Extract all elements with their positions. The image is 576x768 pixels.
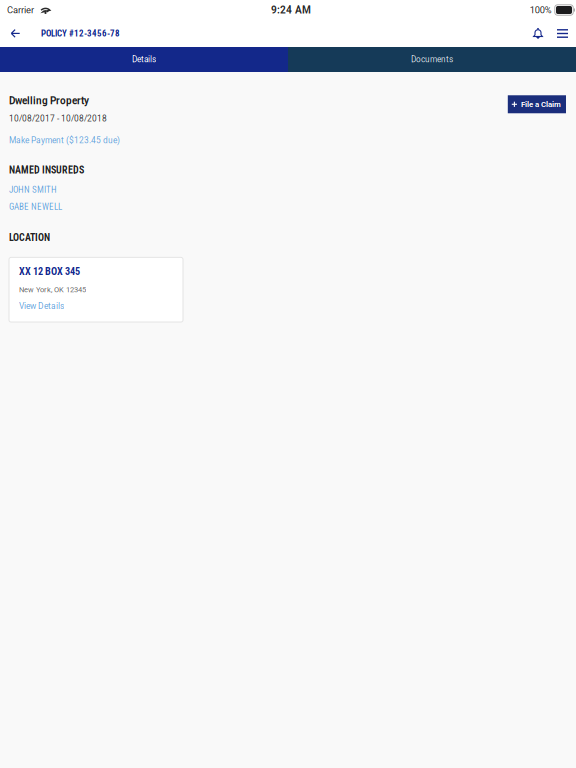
button[interactable]: Back — [2, 20, 29, 47]
button[interactable]: Notifications — [524, 20, 552, 47]
button[interactable]: POLICY #12-3456-78 — [29, 20, 126, 47]
staticText: GABE NEWELL — [9, 201, 62, 212]
button[interactable]: GABE NEWELL — [9, 201, 62, 212]
button[interactable]: Details — [0, 47, 288, 72]
staticText: New York, OK 12345 — [19, 285, 86, 294]
button[interactable]: XX 12 BOX 345 — [9, 257, 183, 322]
button[interactable]: Make Payment ($123.45 due) — [9, 136, 120, 145]
staticText: Carrier — [7, 4, 34, 15]
staticText: 10/08/2017 - 10/08/2018 — [9, 114, 107, 123]
staticText: JOHN SMITH — [9, 184, 57, 195]
button[interactable]: JOHN SMITH — [9, 184, 57, 195]
staticText: XX 12 BOX 345 — [19, 265, 80, 277]
staticText: 100% — [530, 4, 552, 15]
staticText: 9:24 AM — [271, 4, 311, 16]
staticText: LOCATION — [9, 232, 50, 243]
staticText: Make Payment ($123.45 due) — [9, 136, 120, 145]
staticText: NAMED INSUREDS — [9, 164, 84, 176]
button[interactable]: Menu — [552, 20, 573, 47]
staticText: File a Claim — [521, 100, 561, 109]
staticText: Details — [132, 55, 156, 64]
button[interactable]: Documents — [288, 47, 576, 72]
staticText: View Details — [19, 301, 64, 311]
button[interactable]: File a Claim — [508, 95, 566, 113]
staticText: POLICY #12-3456-78 — [41, 28, 120, 39]
staticText: Dwelling Property — [9, 95, 89, 107]
staticText: Documents — [411, 55, 453, 64]
